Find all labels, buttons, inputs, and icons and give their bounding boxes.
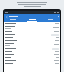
button[interactable]: More options [57,15,59,17]
button[interactable] [4,39,60,42]
button[interactable] [4,22,60,25]
button[interactable] [4,59,60,62]
button[interactable] [4,18,22,22]
button[interactable] [4,30,60,33]
button[interactable] [22,18,41,22]
button[interactable] [4,25,60,30]
button[interactable] [4,47,60,50]
button[interactable] [41,18,60,22]
button[interactable] [4,33,60,36]
button[interactable] [4,56,60,59]
button[interactable] [4,50,60,53]
button[interactable] [4,36,60,39]
button[interactable] [4,53,60,56]
button[interactable] [4,42,60,47]
button[interactable] [4,62,60,65]
button[interactable]: Back [5,15,8,18]
